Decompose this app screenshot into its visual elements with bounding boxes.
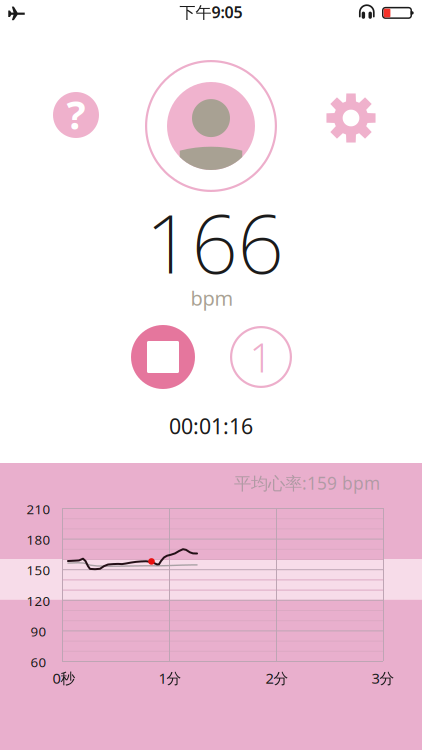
staticText: 180 (26, 531, 50, 548)
button[interactable]: Stop (131, 325, 195, 389)
button[interactable]: Lap (229, 325, 293, 389)
staticText: 120 (26, 592, 50, 610)
staticText: 平均心率:159 bpm (234, 471, 380, 494)
button[interactable]: Help (53, 92, 99, 138)
staticText: 166 (145, 188, 283, 296)
staticText: 90 (30, 622, 46, 640)
staticText: 150 (26, 561, 50, 579)
staticText: 60 (30, 653, 46, 671)
staticText: 2分 (265, 668, 288, 688)
staticText: 00:01:16 (169, 412, 253, 440)
staticText: 1 (249, 330, 272, 383)
staticText: 3分 (371, 668, 394, 688)
staticText: ? (66, 87, 85, 140)
staticText: 210 (26, 500, 50, 518)
staticText: bpm (190, 285, 233, 311)
staticText: 下午9:05 (179, 1, 242, 23)
staticText: 0秒 (52, 668, 75, 688)
button[interactable]: Settings (326, 93, 376, 143)
staticText: 1分 (158, 668, 181, 688)
